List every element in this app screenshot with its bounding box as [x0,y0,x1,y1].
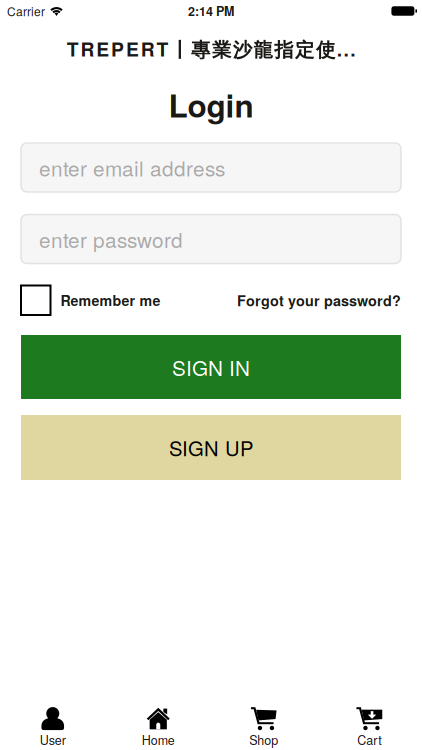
button[interactable]: SIGN IN [21,335,401,399]
staticText: TREPERT丨專業沙龍指定使... [67,35,355,62]
staticText: Remember me [60,290,160,310]
button[interactable]: Forgot your password? [237,290,401,310]
staticText: SIGN IN [172,352,250,382]
staticText: enter password [39,224,183,254]
button[interactable]: Home [105,695,211,750]
staticText: Shop [249,731,278,748]
staticText: Home [142,731,175,748]
staticText: 2:14 PM [188,2,234,20]
staticText: Carrier [7,2,45,20]
button[interactable]: Remember me [21,285,160,315]
staticText: enter email address [39,153,225,182]
staticText: SIGN UP [169,433,253,462]
staticText: User [40,731,66,748]
button[interactable]: enter email address [21,143,401,192]
staticText: Cart [357,731,381,748]
button[interactable]: enter password [21,214,401,263]
staticText: Forgot your password? [237,290,401,310]
button[interactable]: SIGN UP [21,415,401,480]
button[interactable]: User [0,695,105,750]
staticText: Login [168,82,253,127]
button[interactable]: Shop [211,695,316,750]
button[interactable]: Cart [316,695,422,750]
